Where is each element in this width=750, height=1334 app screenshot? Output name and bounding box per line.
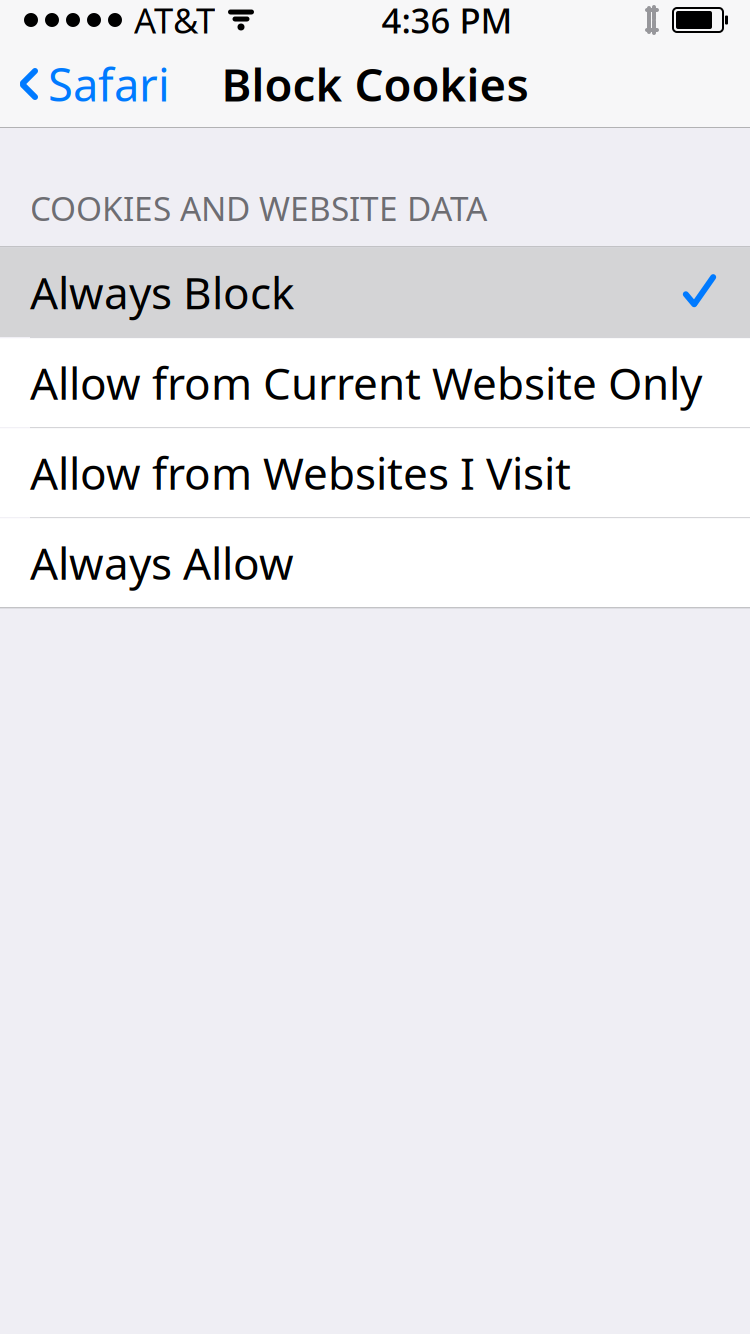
button[interactable]: Safari: [0, 44, 170, 124]
staticText: Allow from Current Website Only: [30, 353, 702, 412]
staticText: Always Allow: [30, 533, 294, 592]
button[interactable]: Always Block: [0, 247, 750, 337]
staticText: Safari: [48, 54, 170, 114]
staticText: AT&T: [134, 0, 215, 43]
staticText: COOKIES AND WEBSITE DATA: [30, 186, 487, 230]
staticText: Always Block: [30, 263, 294, 321]
staticText: Block Cookies: [221, 54, 528, 114]
button[interactable]: Always Allow: [0, 517, 750, 607]
button[interactable]: Allow from Websites I Visit: [0, 427, 750, 517]
button[interactable]: Allow from Current Website Only: [0, 337, 750, 427]
staticText: Allow from Websites I Visit: [30, 443, 571, 502]
staticText: 4:36 PM: [381, 0, 512, 43]
